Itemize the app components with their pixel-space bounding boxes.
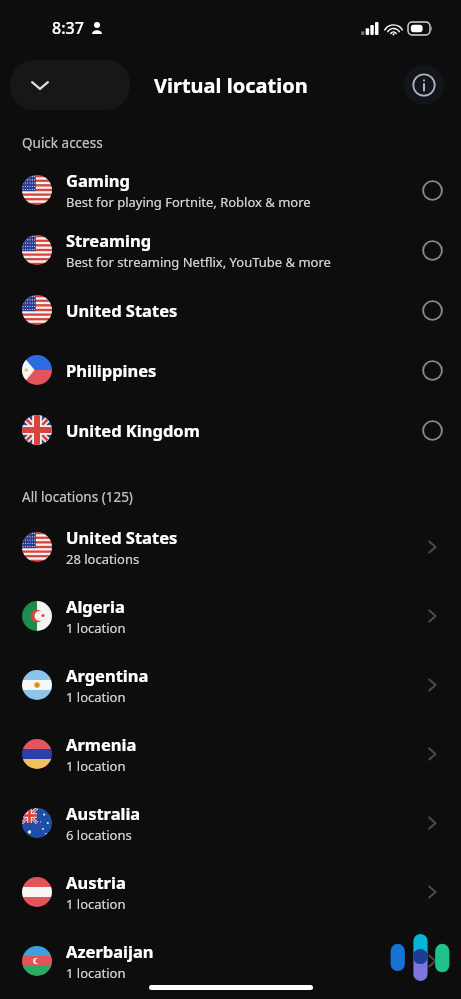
staticText: Best for playing Fortnite, Roblox & more	[66, 193, 311, 211]
staticText: Philippines	[66, 359, 157, 381]
button[interactable]: United States	[0, 280, 461, 340]
button[interactable]: Gaming	[0, 160, 461, 220]
staticText: 6 locations	[66, 826, 132, 844]
staticText: Streaming	[66, 229, 152, 251]
button[interactable]: Azerbaijan	[0, 926, 461, 995]
staticText: 1 location	[66, 895, 126, 913]
staticText: United Kingdom	[66, 419, 200, 441]
button[interactable]: Info	[404, 65, 444, 105]
staticText: Best for streaming Netflix, YouTube & mo…	[66, 253, 331, 271]
staticText: 1 location	[66, 757, 126, 775]
button[interactable]: Austria	[0, 857, 461, 926]
staticText: Virtual location	[154, 72, 308, 99]
button[interactable]: Algeria	[0, 581, 461, 650]
button[interactable]: Streaming	[0, 220, 461, 280]
staticText: Algeria	[66, 595, 125, 617]
staticText: 28 locations	[66, 550, 140, 568]
staticText: Azerbaijan	[66, 940, 154, 962]
button[interactable]: United States	[0, 512, 461, 581]
staticText: 1 location	[66, 964, 126, 982]
staticText: Gaming	[66, 169, 131, 191]
staticText: Quick access	[22, 134, 103, 152]
staticText: 8:37	[52, 17, 84, 39]
button[interactable]: United Kingdom	[0, 400, 461, 460]
staticText: Armenia	[66, 733, 137, 755]
button[interactable]: Argentina	[0, 650, 461, 719]
staticText: 1 location	[66, 619, 126, 637]
button[interactable]: Australia	[0, 788, 461, 857]
staticText: 1 location	[66, 688, 126, 706]
button[interactable]: Armenia	[0, 719, 461, 788]
button[interactable]: Collapse	[16, 61, 64, 109]
button[interactable]: Philippines	[0, 340, 461, 400]
staticText: Austria	[66, 871, 126, 893]
staticText: United States	[66, 299, 178, 321]
staticText: Australia	[66, 802, 141, 824]
staticText: All locations (125)	[22, 488, 133, 506]
staticText: United States	[66, 526, 178, 548]
staticText: Argentina	[66, 664, 149, 686]
